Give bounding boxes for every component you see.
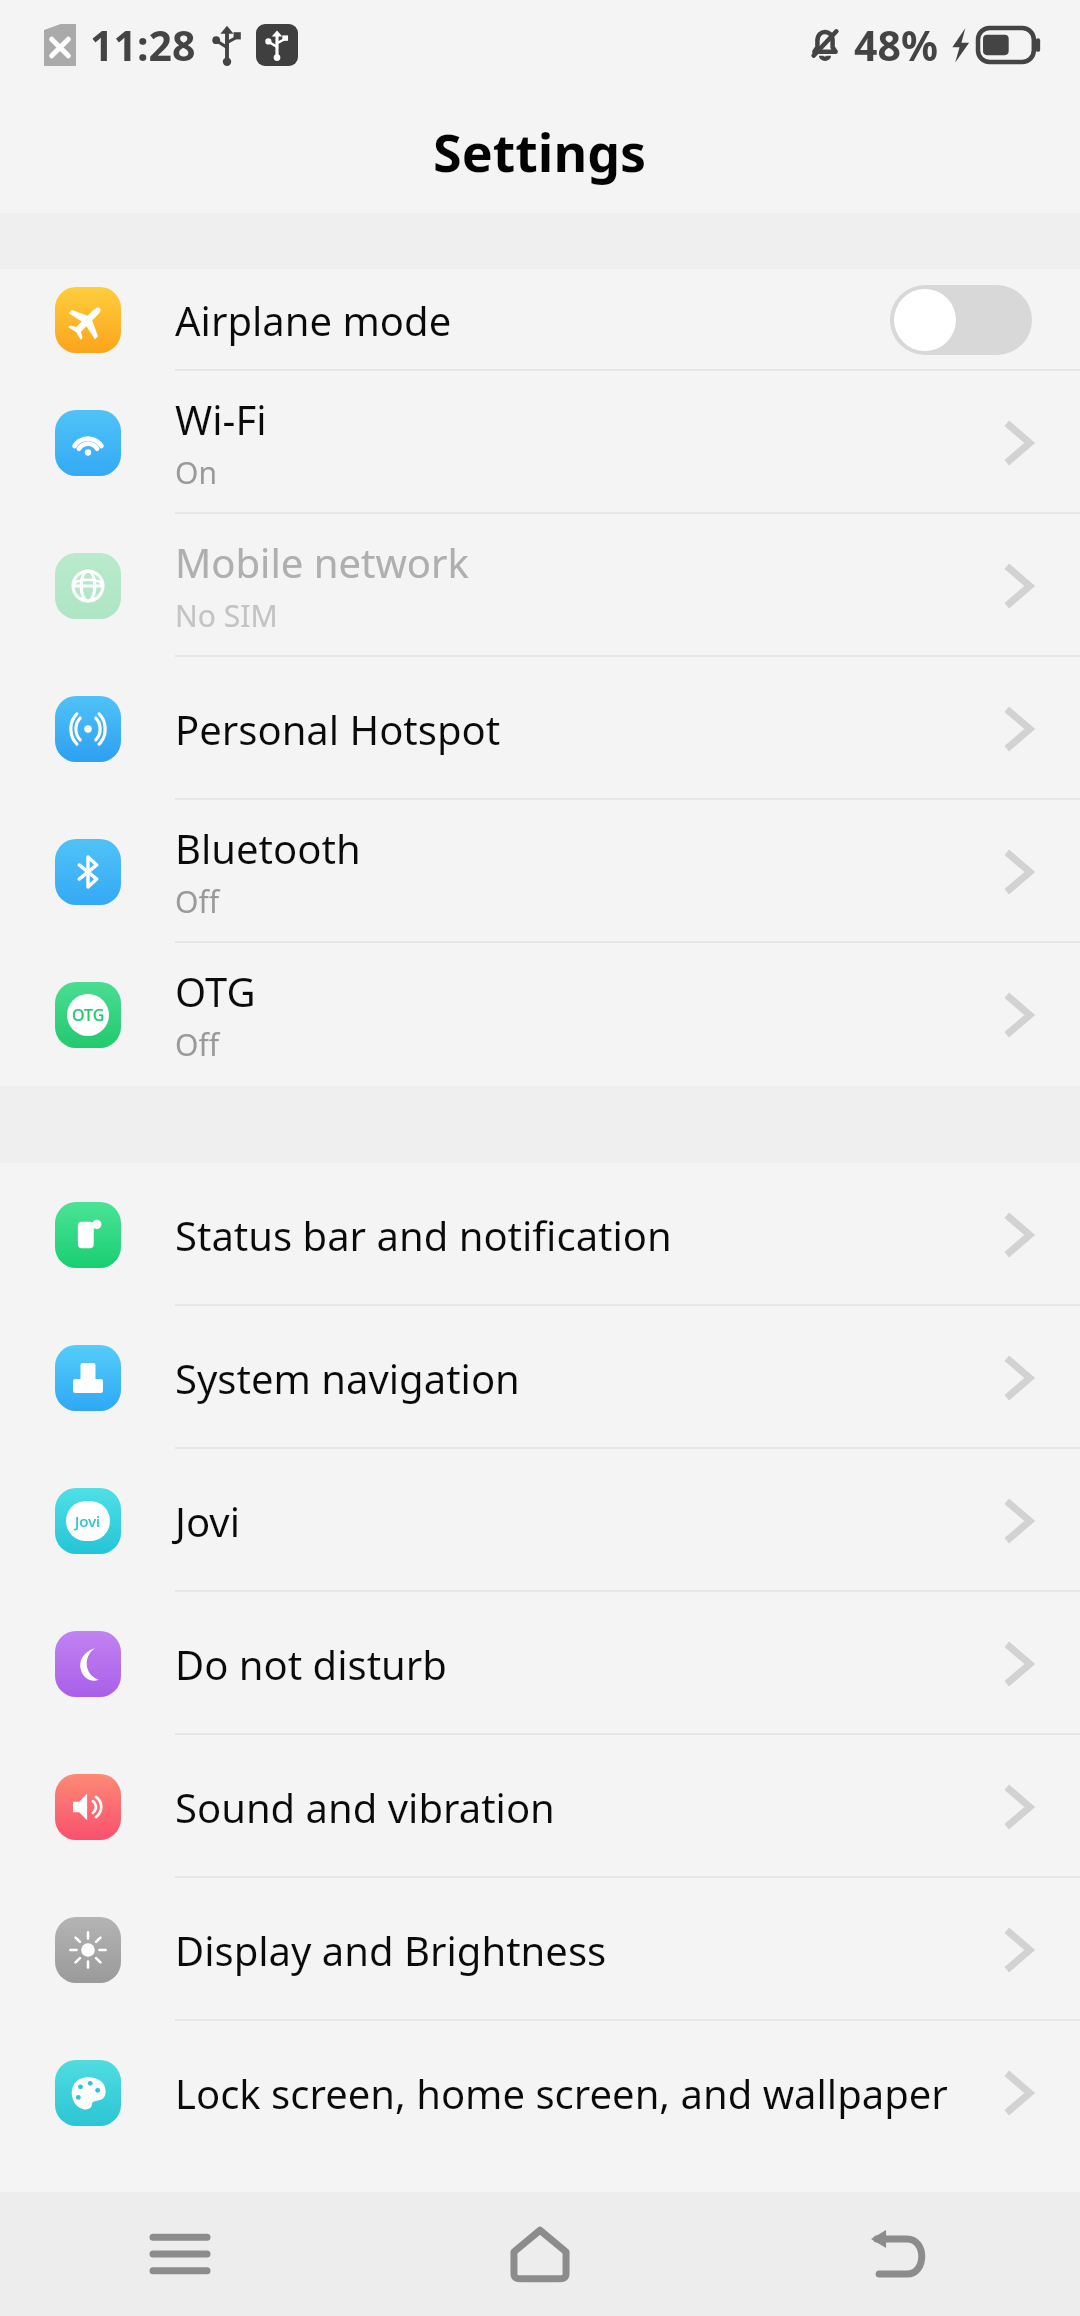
- button[interactable]: Wi-Fi: [0, 371, 1080, 514]
- staticText: Airplane mode: [175, 293, 452, 347]
- button[interactable]: Mobile network: [0, 514, 1080, 657]
- staticText: On: [175, 452, 217, 493]
- button[interactable]: Bluetooth: [0, 800, 1080, 943]
- button[interactable]: OTG: [0, 943, 1080, 1086]
- staticText: OTG: [175, 964, 256, 1018]
- staticText: 11:28: [90, 17, 196, 73]
- staticText: Settings: [433, 116, 647, 187]
- button[interactable]: Do not disturb: [0, 1592, 1080, 1735]
- button[interactable]: Airplane mode: [0, 269, 1080, 371]
- staticText: Bluetooth: [175, 821, 361, 875]
- staticText: OTG: [72, 1004, 105, 1026]
- staticText: No SIM: [175, 595, 278, 636]
- button[interactable]: Status bar and notification: [0, 1163, 1080, 1306]
- staticText: Off: [175, 881, 220, 922]
- staticText: System navigation: [175, 1351, 520, 1405]
- button[interactable]: Recent apps: [0, 2192, 360, 2316]
- button[interactable]: Display and Brightness: [0, 1878, 1080, 2021]
- staticText: Mobile network: [175, 535, 469, 589]
- button[interactable]: Airplane mode toggle: [890, 285, 1032, 355]
- staticText: Wi-Fi: [175, 392, 267, 446]
- staticText: 48%: [854, 17, 938, 73]
- staticText: Do not disturb: [175, 1637, 447, 1691]
- staticText: Display and Brightness: [175, 1923, 607, 1977]
- button[interactable]: Back: [720, 2192, 1080, 2316]
- staticText: Jovi: [175, 1494, 240, 1548]
- staticText: Personal Hotspot: [175, 702, 501, 756]
- staticText: Off: [175, 1024, 220, 1065]
- button[interactable]: Lock screen, home screen, and wallpaper: [0, 2021, 1080, 2164]
- button[interactable]: Jovi: [0, 1449, 1080, 1592]
- staticText: Sound and vibration: [175, 1780, 555, 1834]
- button[interactable]: Sound and vibration: [0, 1735, 1080, 1878]
- button[interactable]: Personal Hotspot: [0, 657, 1080, 800]
- staticText: Status bar and notification: [175, 1208, 672, 1262]
- button[interactable]: System navigation: [0, 1306, 1080, 1449]
- staticText: Jovi: [75, 1511, 101, 1531]
- button[interactable]: Home: [360, 2192, 720, 2316]
- staticText: Lock screen, home screen, and wallpaper: [175, 2066, 948, 2120]
